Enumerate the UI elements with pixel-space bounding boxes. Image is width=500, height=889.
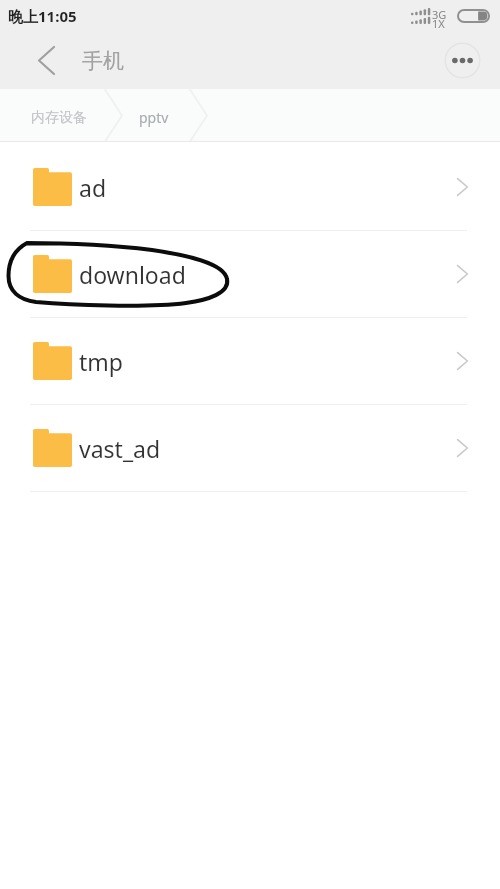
button[interactable]: ad: [0, 144, 500, 231]
button[interactable]: tmp: [0, 318, 500, 405]
staticText: 晚上11:05: [8, 6, 77, 26]
button[interactable]: pptv: [129, 91, 179, 144]
staticText: tmp: [79, 346, 123, 377]
staticText: 1X: [432, 16, 445, 31]
button[interactable]: Back: [0, 32, 74, 89]
button[interactable]: download: [0, 231, 500, 318]
button[interactable]: vast_ad: [0, 405, 500, 492]
button[interactable]: More options: [444, 42, 481, 79]
staticText: pptv: [139, 108, 169, 127]
button[interactable]: 内存设备: [22, 91, 96, 144]
staticText: 内存设备: [31, 109, 87, 127]
staticText: ad: [79, 172, 107, 203]
staticText: vast_ad: [79, 433, 161, 464]
staticText: download: [79, 259, 186, 290]
staticText: 手机: [82, 48, 124, 74]
staticText: 3G: [432, 7, 447, 22]
